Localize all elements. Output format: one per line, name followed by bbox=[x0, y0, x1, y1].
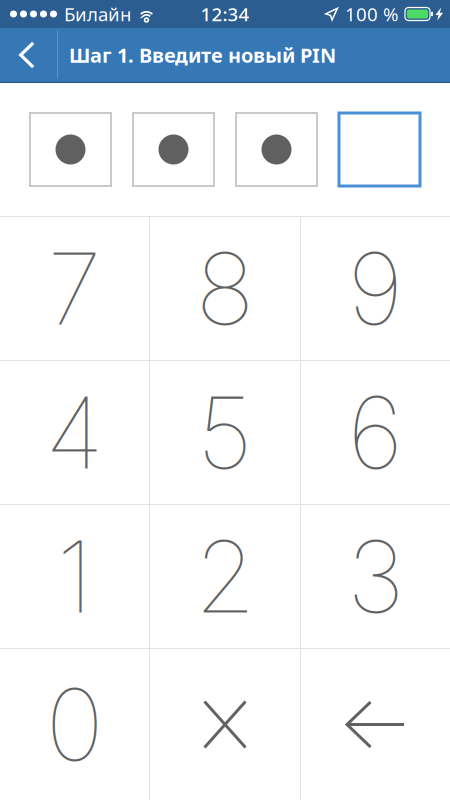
staticText: 1 bbox=[56, 517, 92, 636]
staticText: 7 bbox=[47, 229, 101, 348]
staticText: 3 bbox=[347, 517, 404, 636]
button[interactable]: Back bbox=[0, 28, 57, 82]
staticText: 0 bbox=[45, 665, 103, 784]
button[interactable]: 6 bbox=[301, 361, 450, 504]
staticText: Шаг 1. Введите новый PIN bbox=[69, 42, 336, 68]
button[interactable]: 4 bbox=[0, 361, 149, 504]
button[interactable]: 5 bbox=[150, 361, 300, 504]
staticText: 8 bbox=[195, 229, 254, 348]
staticText: 12:34 bbox=[200, 2, 249, 26]
button[interactable]: 9 bbox=[301, 217, 450, 360]
staticText: Билайн bbox=[64, 2, 131, 26]
staticText: 5 bbox=[197, 373, 253, 492]
button[interactable]: 8 bbox=[150, 217, 300, 360]
button[interactable]: 2 bbox=[150, 505, 300, 648]
button[interactable]: 3 bbox=[301, 505, 450, 648]
button[interactable]: 7 bbox=[0, 217, 149, 360]
staticText: 100 % bbox=[345, 2, 399, 26]
staticText: 9 bbox=[347, 229, 403, 348]
button[interactable]: 1 bbox=[0, 505, 149, 648]
button[interactable]: Clear bbox=[150, 653, 300, 796]
staticText: 6 bbox=[347, 373, 403, 492]
button[interactable]: Backspace bbox=[301, 653, 450, 796]
staticText: 4 bbox=[45, 373, 104, 492]
staticText: 2 bbox=[194, 517, 255, 636]
button[interactable]: 0 bbox=[0, 653, 149, 796]
